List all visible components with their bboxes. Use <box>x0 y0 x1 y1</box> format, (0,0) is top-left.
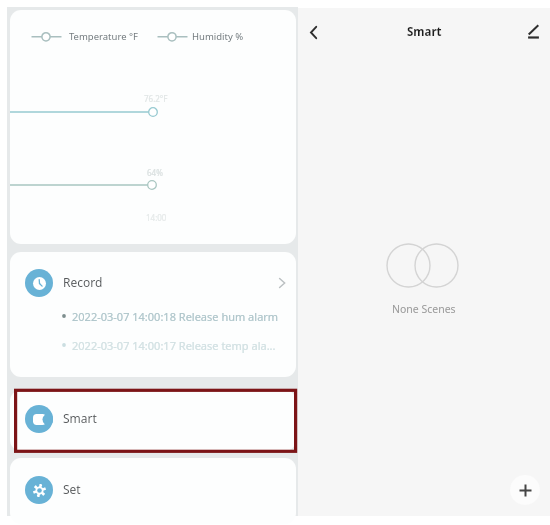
button[interactable]: Set <box>10 458 296 524</box>
staticText: None Scenes <box>392 302 456 316</box>
staticText: Set <box>63 481 81 497</box>
staticText: 2022-03-07 14:00:17 Release temp ala... <box>72 338 276 353</box>
staticText: 76.2°F <box>144 93 168 104</box>
staticText: 14:00 <box>146 212 167 223</box>
button[interactable]: Add scene <box>510 475 540 505</box>
staticText: Smart <box>407 24 442 40</box>
staticText: Humidity % <box>192 30 244 43</box>
staticText: Record <box>63 274 103 290</box>
button[interactable]: Edit <box>518 16 548 46</box>
staticText: Temperature °F <box>69 30 138 43</box>
staticText: Smart <box>63 410 97 426</box>
staticText: 64% <box>147 167 163 178</box>
button[interactable]: Record <box>10 252 296 314</box>
staticText: 2022-03-07 14:00:18 Release hum alarm <box>72 309 279 324</box>
button[interactable]: Smart <box>10 390 296 451</box>
button[interactable]: Back <box>298 17 328 47</box>
